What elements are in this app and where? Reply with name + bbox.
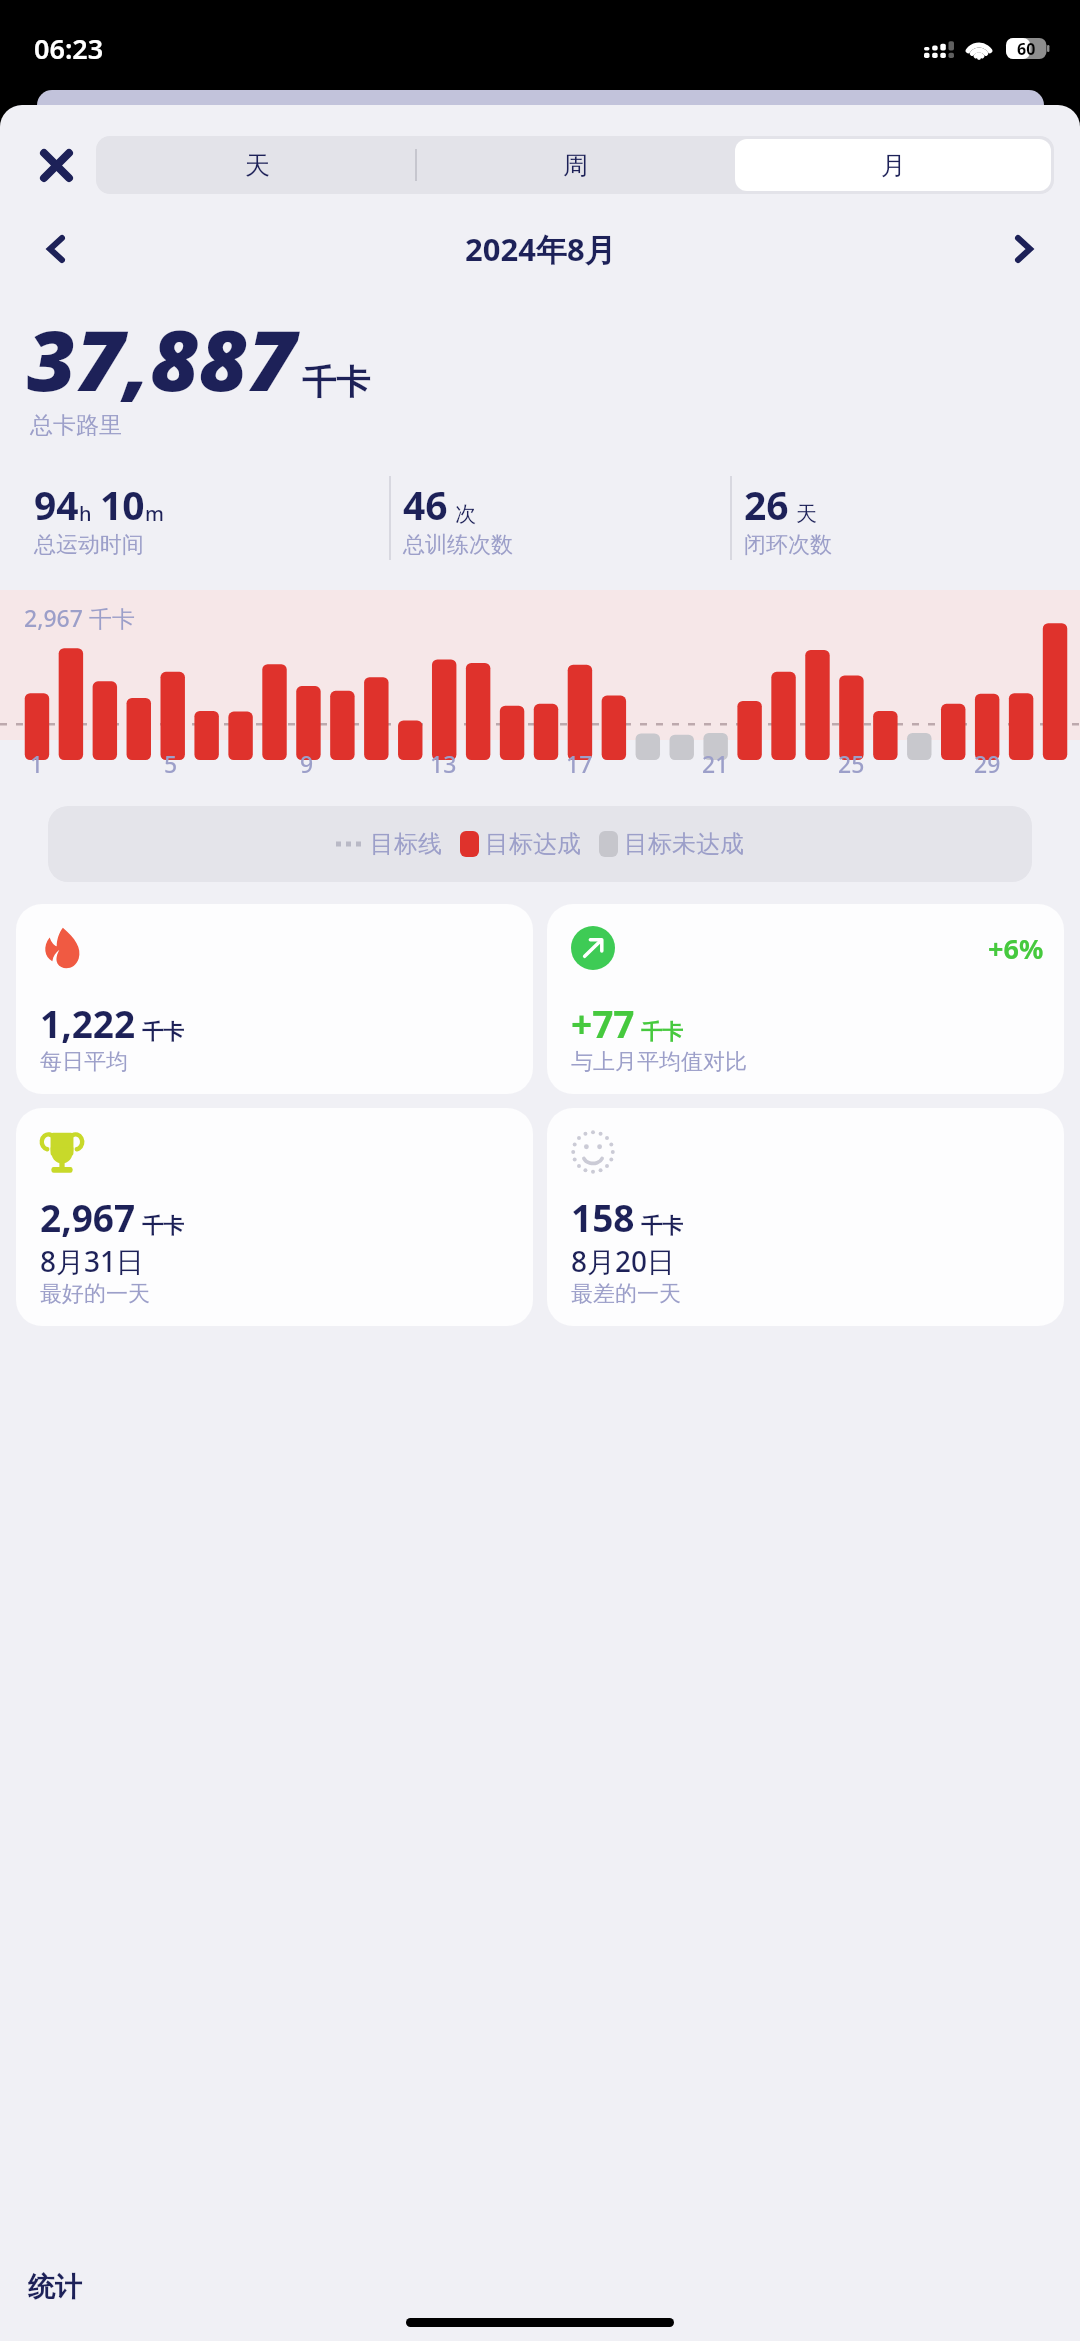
- staticText: 千卡: [641, 1019, 683, 1045]
- staticText: 1,222: [40, 998, 136, 1048]
- staticText: 千卡: [142, 1213, 184, 1239]
- staticText: 29: [974, 748, 1001, 779]
- button[interactable]: +6%: [547, 904, 1064, 1094]
- staticText: 9: [300, 748, 314, 779]
- staticText: 17: [566, 748, 593, 779]
- staticText: 8月31日: [40, 1242, 145, 1280]
- staticText: 2024年8月: [465, 228, 616, 270]
- button[interactable]: 1,222: [16, 904, 533, 1094]
- button[interactable]: 月: [735, 139, 1051, 191]
- staticText: 目标未达成: [624, 829, 744, 859]
- button[interactable]: 2,967: [16, 1108, 533, 1326]
- staticText: 1: [30, 748, 44, 779]
- staticText: 闭环次数: [744, 531, 832, 559]
- staticText: 46: [403, 478, 448, 531]
- staticText: h: [79, 500, 92, 527]
- staticText: 周: [563, 150, 588, 181]
- staticText: 94: [34, 478, 79, 531]
- staticText: 次: [455, 501, 476, 527]
- staticText: 千卡: [641, 1213, 683, 1239]
- staticText: 26: [744, 478, 789, 531]
- staticText: 158: [571, 1192, 635, 1242]
- button[interactable]: Previous month: [30, 223, 82, 275]
- button[interactable]: Next month: [998, 223, 1050, 275]
- staticText: 千卡: [302, 361, 370, 404]
- staticText: 每日平均: [40, 1048, 128, 1076]
- staticText: 06:23: [34, 30, 104, 67]
- staticText: 21: [702, 748, 729, 779]
- button[interactable]: 目标线: [48, 806, 1032, 882]
- staticText: 最差的一天: [571, 1280, 681, 1308]
- staticText: 统计: [28, 2270, 82, 2304]
- staticText: 60: [1017, 38, 1036, 59]
- staticText: 13: [430, 748, 457, 779]
- staticText: 总训练次数: [403, 531, 513, 559]
- staticText: +6%: [988, 930, 1044, 967]
- button[interactable]: 158: [547, 1108, 1064, 1326]
- button[interactable]: 周: [417, 139, 733, 191]
- staticText: 10: [100, 478, 145, 531]
- staticText: 最好的一天: [40, 1280, 150, 1308]
- button[interactable]: 天: [99, 139, 415, 191]
- staticText: +77: [571, 998, 635, 1048]
- staticText: m: [145, 500, 164, 527]
- staticText: 与上月平均值对比: [571, 1048, 747, 1076]
- staticText: 千卡: [142, 1019, 184, 1045]
- staticText: 2,967: [40, 1192, 136, 1242]
- staticText: 总运动时间: [34, 531, 144, 559]
- staticText: 目标线: [370, 829, 442, 859]
- staticText: 8月20日: [571, 1242, 676, 1280]
- staticText: 总卡路里: [30, 411, 122, 440]
- staticText: 天: [245, 150, 270, 181]
- staticText: 目标达成: [485, 829, 581, 859]
- staticText: 25: [838, 748, 865, 779]
- staticText: 天: [796, 501, 817, 527]
- button[interactable]: Close: [26, 135, 86, 195]
- staticText: 月: [881, 150, 906, 181]
- staticText: 37,887: [27, 301, 297, 415]
- staticText: 2,967 千卡: [24, 602, 135, 633]
- staticText: 5: [164, 748, 178, 779]
